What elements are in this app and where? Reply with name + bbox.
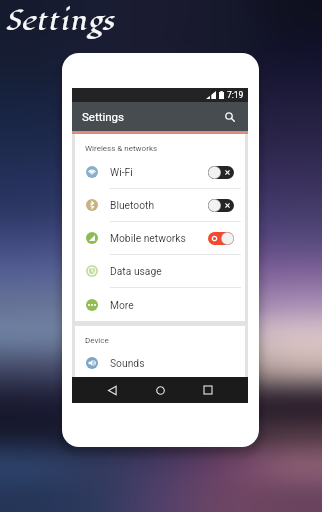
button[interactable]: Back: [100, 378, 124, 402]
staticText: Bluetooth: [110, 199, 155, 211]
staticText: 7:19: [227, 90, 244, 100]
button[interactable]: Recent apps: [196, 378, 220, 402]
staticText: Settings: [6, 3, 115, 38]
button[interactable]: Bluetooth: [75, 189, 245, 222]
button[interactable]: Home: [148, 378, 172, 402]
button[interactable]: Sounds: [75, 348, 245, 377]
button[interactable]: Data usage: [75, 255, 245, 288]
staticText: Sounds: [110, 357, 145, 369]
staticText: Wi-Fi: [110, 166, 133, 178]
staticText: Mobile networks: [110, 232, 186, 244]
button[interactable]: Wi-Fi: [75, 156, 245, 189]
staticText: More: [110, 299, 134, 311]
staticText: Wireless & networks: [85, 144, 158, 153]
button[interactable]: Search: [221, 108, 239, 126]
staticText: Device: [85, 336, 109, 345]
staticText: Data usage: [110, 265, 162, 277]
button[interactable]: More: [75, 288, 245, 321]
staticText: Settings: [82, 110, 124, 123]
button[interactable]: Mobile networks: [75, 222, 245, 255]
